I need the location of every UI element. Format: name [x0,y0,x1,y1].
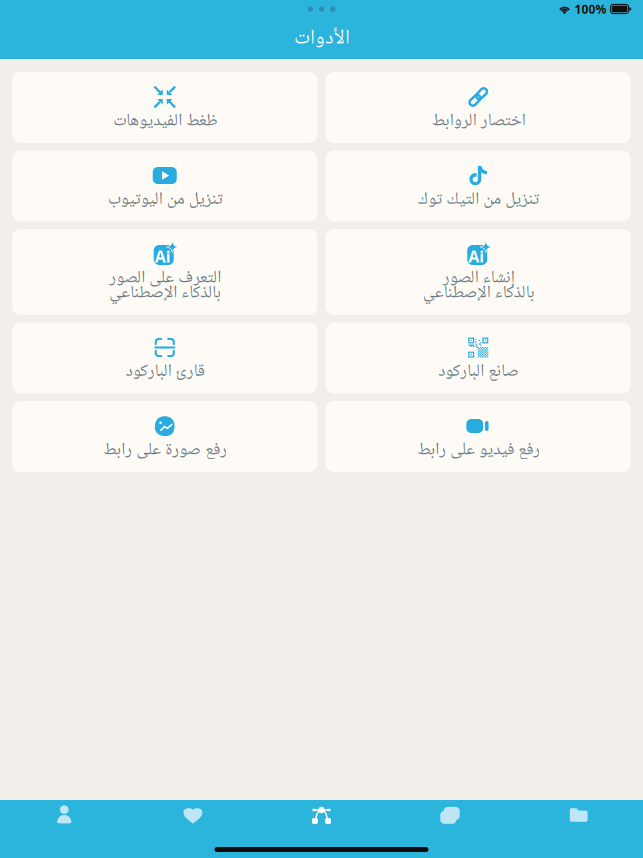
button[interactable]: صانع الباركود [325,322,631,393]
staticText: تنزيل من التيك توك [418,185,539,215]
button[interactable]: Ai [12,229,317,315]
button[interactable]: Tools [257,800,386,830]
button[interactable]: Favourites [129,800,257,830]
staticText: قارئ الباركود [125,357,204,387]
button[interactable]: رفع فيديو على رابط [325,401,631,472]
button[interactable]: تنزيل من التيك توك [325,150,631,221]
staticText: Ai [155,246,171,267]
button[interactable]: رفع صورة على رابط [12,401,317,472]
staticText: بالذكاء الإصطناعي [109,279,221,308]
staticText: 100% [574,1,606,17]
button[interactable]: Photos [386,800,514,830]
button[interactable]: ظغط الفيديوهات [12,72,317,143]
staticText: رفع صورة على رابط [103,436,227,465]
button[interactable]: Files [514,800,643,830]
staticText: ظغط الفيديوهات [113,107,217,136]
staticText: إنشاء الصور [442,264,514,293]
button[interactable]: Profile [0,800,129,830]
staticText: صانع الباركود [438,357,519,387]
button[interactable]: اختصار الروابط [325,72,631,143]
button[interactable]: Ai [325,229,631,315]
staticText: الأدوات [293,21,349,57]
staticText: رفع فيديو على رابط [417,436,540,465]
staticText: اختصار الروابط [431,107,525,136]
staticText: Ai [468,246,484,267]
staticText: التعرف على الصور [109,264,221,293]
staticText: تنزيل من اليوتيوب [107,185,222,215]
button[interactable]: قارئ الباركود [12,322,317,393]
button[interactable]: تنزيل من اليوتيوب [12,150,317,221]
staticText: بالذكاء الإصطناعي [422,279,534,308]
